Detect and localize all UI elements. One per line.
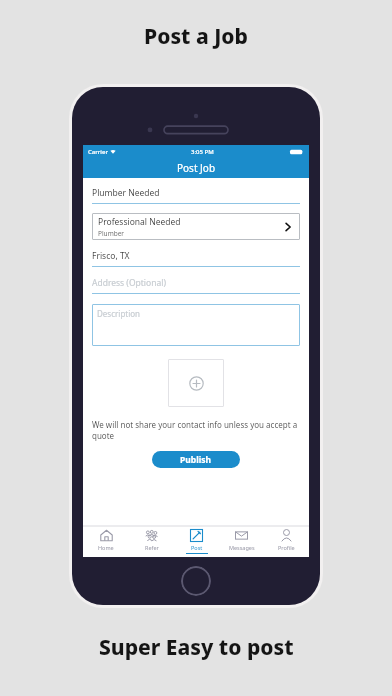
- staticText: We will not share your contact info unle…: [92, 419, 300, 441]
- staticText: Home: [98, 544, 114, 551]
- staticText: Plumber Needed: [92, 187, 160, 199]
- button[interactable]: Professional Needed: [92, 213, 300, 240]
- staticText: Plumber: [98, 229, 125, 238]
- staticText: Post Job: [177, 161, 216, 175]
- staticText: Post: [191, 544, 203, 551]
- staticText: Super Easy to post: [99, 633, 294, 662]
- button[interactable]: Post: [174, 526, 219, 557]
- button[interactable]: Home: [83, 526, 129, 557]
- button[interactable]: Publish: [152, 451, 240, 468]
- staticText: Publish: [180, 454, 212, 466]
- button[interactable]: Frisco, TX: [92, 250, 300, 267]
- staticText: Address (Optional): [92, 277, 166, 289]
- staticText: Post a Job: [144, 22, 248, 51]
- staticText: Description: [97, 308, 141, 319]
- button[interactable]: Refer: [129, 526, 174, 557]
- button[interactable]: Add photo: [168, 359, 224, 407]
- button[interactable]: Plumber Needed: [92, 187, 300, 204]
- button[interactable]: Messages: [219, 526, 264, 557]
- staticText: Carrier: [88, 148, 108, 156]
- staticText: Professional Needed: [98, 216, 181, 228]
- button[interactable]: Profile: [264, 526, 309, 557]
- button[interactable]: Description: [92, 304, 300, 346]
- staticText: 3:05 PM: [191, 148, 214, 156]
- button[interactable]: Address (Optional): [92, 277, 300, 294]
- staticText: Frisco, TX: [92, 250, 130, 262]
- staticText: Refer: [145, 544, 159, 551]
- staticText: Profile: [278, 544, 295, 551]
- staticText: Messages: [229, 544, 255, 551]
